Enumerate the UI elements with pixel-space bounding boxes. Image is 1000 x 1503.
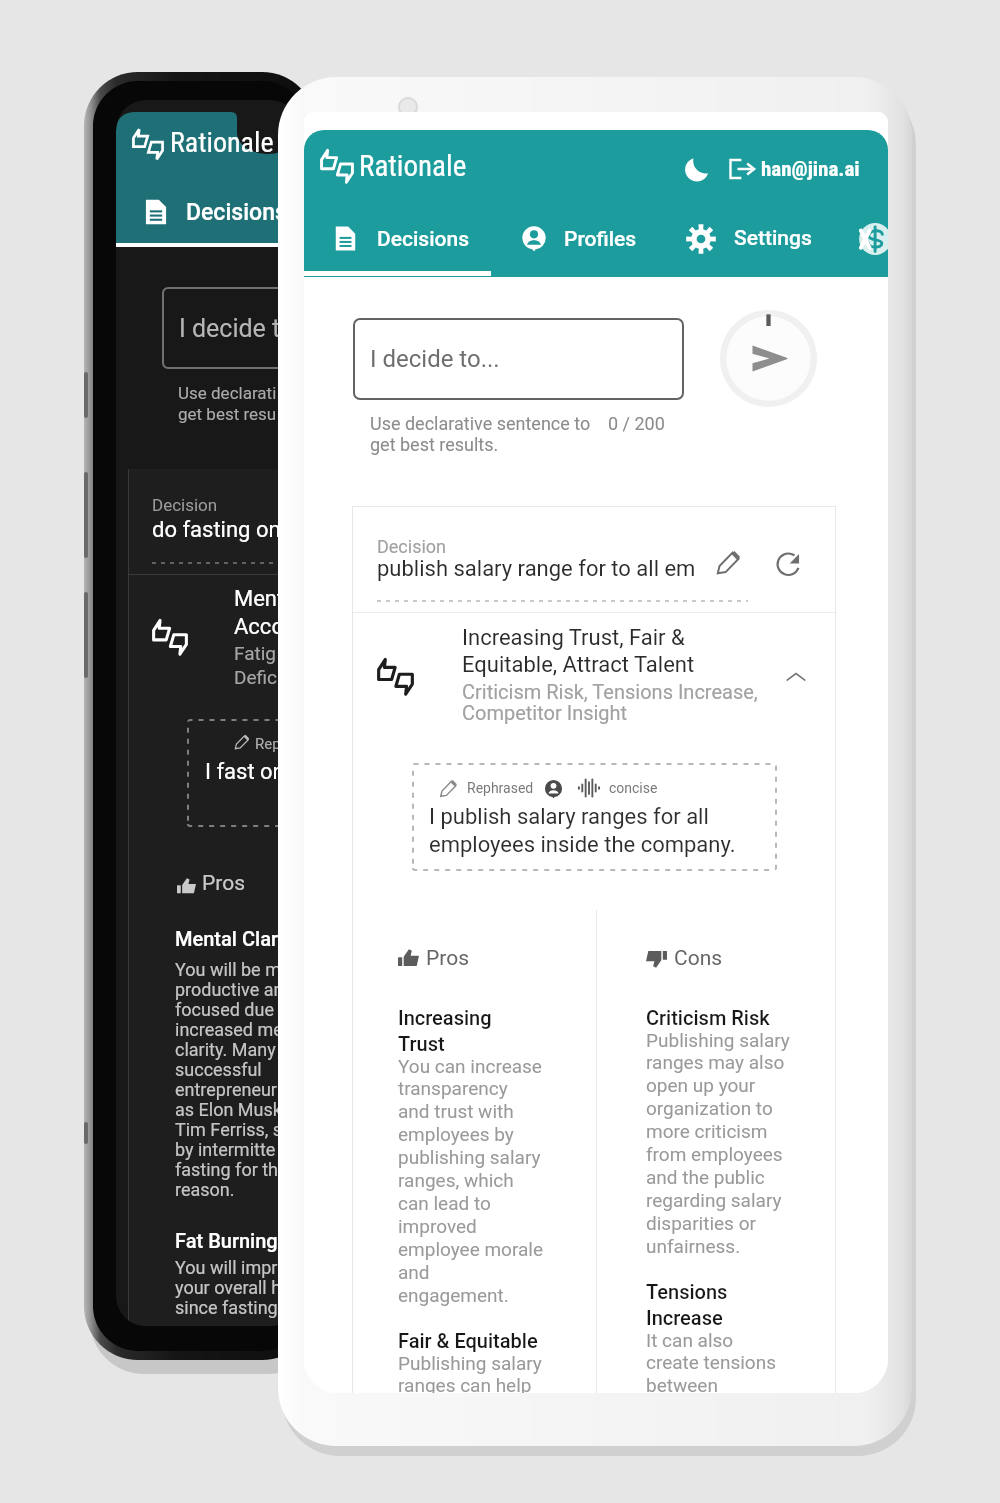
staticText: Decision [152,495,218,515]
staticText: Use declarative sentence to get best res… [370,413,591,455]
staticText: Pros [202,871,245,896]
staticText: Increasing Trust [398,1006,492,1055]
button[interactable]: Edit decision [706,540,750,584]
staticText: Criticism Risk, Tensions Increase, Compe… [462,680,758,725]
staticText: Tensions Increase [646,1280,728,1329]
staticText: Settings [734,226,812,251]
staticText: 0 / 200 [608,413,665,434]
staticText: han@jina.ai [761,157,860,182]
staticText: Rationale [359,149,467,183]
staticText: It can also create tensions between [646,1329,776,1393]
button[interactable]: Pricing [850,220,888,258]
staticText: Pros [426,946,469,971]
button[interactable]: Dark mode [678,150,716,188]
staticText: Mental Clari [175,927,284,950]
staticText: concise [609,780,658,796]
staticText: I publish salary ranges for all employee… [429,804,736,858]
staticText: You can increase transparency and trust … [398,1055,544,1307]
staticText: Cons [674,946,723,971]
staticText: Rationale [170,126,274,159]
button[interactable]: Decisions [318,209,411,271]
staticText: I fast on [205,759,285,785]
staticText: Use declarati get best resu [178,383,277,424]
staticText: Decisions [186,199,287,226]
staticText: Decisions [377,227,470,252]
staticText: do fasting on [152,517,281,543]
staticText: Publishing salary ranges may also open u… [646,1029,790,1258]
staticText: You will impr your overall h since fasti… [175,1257,282,1319]
staticText: publish salary range for to all employee… [377,556,697,582]
staticText: Publishing salary ranges can help [398,1352,542,1393]
staticText: Ment Acco [234,586,285,640]
staticText: Fair & Equitable [398,1329,538,1352]
button[interactable]: Settings [672,208,750,270]
staticText: I decide to... [179,314,300,343]
staticText: Decision [377,536,447,557]
button[interactable]: Collapse [774,655,818,699]
button[interactable]: Profiles [507,209,580,271]
button[interactable]: Sign out han@jina.ai [726,150,860,188]
staticText: Profiles [564,227,637,252]
staticText: I decide to... [370,345,500,373]
staticText: You will be m productive ar focused due … [175,959,283,1201]
staticText: Rephra [255,735,300,753]
staticText: Increasing Trust, Fair & Equitable, Attr… [462,625,695,677]
button[interactable]: Send [720,310,817,407]
staticText: Fat Burning [175,1229,278,1252]
staticText: Rephrased [467,780,534,796]
button[interactable]: Regenerate [767,540,811,584]
staticText: Criticism Risk [646,1006,770,1029]
button[interactable]: I decide to... [353,318,684,400]
staticText: Fatig Defic [234,642,278,689]
